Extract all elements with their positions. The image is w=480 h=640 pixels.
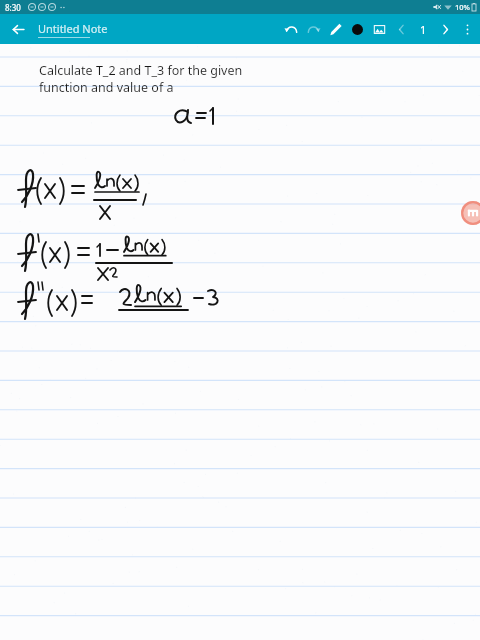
button[interactable]: Pen	[324, 18, 346, 40]
button[interactable]: 1	[412, 18, 434, 40]
other: App badge	[461, 201, 480, 225]
button[interactable]: Redo	[302, 18, 324, 40]
button[interactable]: Colour	[346, 18, 368, 40]
staticText: 8:30	[5, 2, 21, 13]
button[interactable]: More options	[456, 18, 478, 40]
staticText: Untitled Note	[38, 21, 108, 36]
staticText: 1	[420, 22, 427, 37]
staticText: 10%	[455, 2, 470, 12]
staticText: function and value of a	[39, 79, 174, 96]
button[interactable]: Undo	[280, 18, 302, 40]
button[interactable]: Back	[7, 18, 29, 40]
staticText: Calculate T_2 and T_3 for the given	[39, 62, 243, 79]
button[interactable]: Untitled Note	[38, 21, 108, 38]
button[interactable]: Previous page	[390, 18, 412, 40]
button[interactable]: Insert image	[368, 18, 390, 40]
button[interactable]: Next page	[434, 18, 456, 40]
